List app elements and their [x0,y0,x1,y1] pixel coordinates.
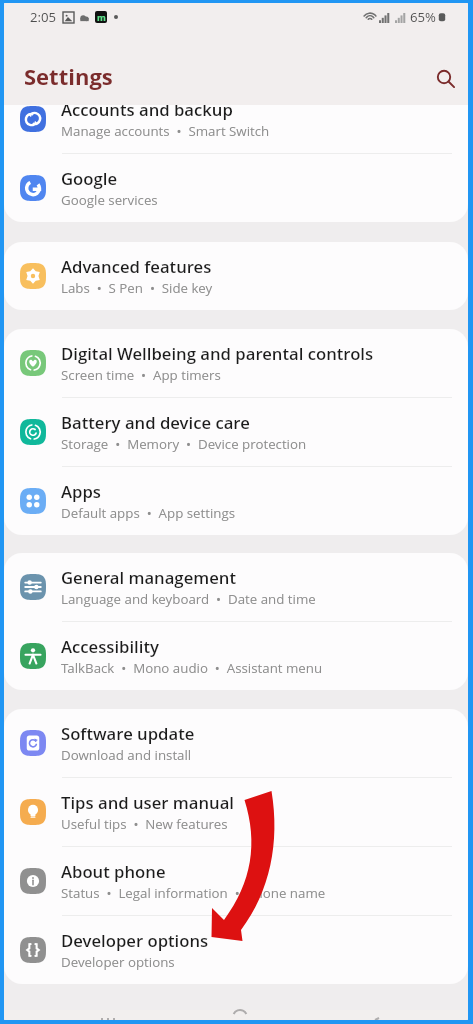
button[interactable]: About phone [4,847,468,915]
staticText: Digital Wellbeing and parental controls [61,342,374,365]
staticText: Google [61,167,118,190]
button[interactable]: Google [4,154,468,222]
staticText: Manage accounts • Smart Switch [61,122,270,140]
staticText: General management [61,566,236,589]
staticText: Labs • S Pen • Side key [61,279,213,297]
staticText: Download and install [61,746,192,764]
staticText: About phone [61,860,166,883]
staticText: Accessibility [61,635,159,658]
staticText: Language and keyboard • Date and time [61,590,316,608]
staticText: Accounts and backup [61,98,233,121]
staticText: Tips and user manual [61,791,234,814]
staticText: m [97,11,106,23]
button[interactable]: Digital Wellbeing and parental controls [4,329,468,397]
button[interactable]: Software update [4,709,468,777]
staticText: Battery and device care [61,411,250,434]
staticText: Developer options [61,929,209,952]
staticText: 65% [410,8,436,26]
staticText: Storage • Memory • Device protection [61,435,307,453]
staticText: Screen time • App timers [61,366,221,384]
button[interactable]: General management [4,553,468,621]
button[interactable]: Accessibility [4,622,468,690]
staticText: Settings [24,61,113,91]
staticText: Developer options [61,953,175,971]
button[interactable]: Tips and user manual [4,778,468,846]
button[interactable]: Search [427,60,465,98]
staticText: Google services [61,191,158,209]
staticText: Default apps • App settings [61,504,236,522]
button[interactable]: Advanced features [4,242,468,310]
staticText: Apps [61,480,101,503]
button[interactable]: Developer options [4,916,468,984]
staticText: Advanced features [61,255,212,278]
staticText: 2:05 [30,8,57,26]
staticText: Useful tips • New features [61,815,228,833]
button[interactable]: Battery and device care [4,398,468,466]
staticText: Status • Legal information • Phone name [61,884,326,902]
button[interactable]: Accounts and backup [4,85,468,153]
button[interactable]: Apps [4,467,468,535]
staticText: Software update [61,722,195,745]
staticText: TalkBack • Mono audio • Assistant menu [61,659,323,677]
